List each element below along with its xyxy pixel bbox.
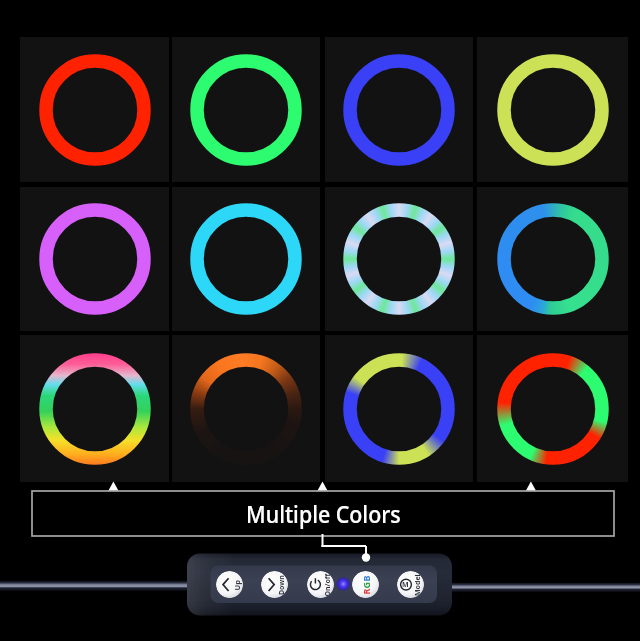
staticText: R <box>359 588 371 594</box>
button[interactable] <box>325 187 473 331</box>
staticText: Up <box>231 579 241 590</box>
button[interactable] <box>20 335 169 482</box>
button[interactable] <box>172 187 320 331</box>
staticText: On/off <box>322 573 332 596</box>
button[interactable] <box>20 37 169 182</box>
staticText: Multiple Colors <box>246 498 401 530</box>
button[interactable] <box>325 37 473 182</box>
button[interactable] <box>172 37 320 182</box>
button[interactable] <box>477 37 628 182</box>
button[interactable] <box>477 335 628 482</box>
button[interactable]: Model <box>397 571 424 598</box>
staticText: Model <box>413 574 423 596</box>
button[interactable]: On/off <box>307 571 334 598</box>
button[interactable] <box>172 335 320 482</box>
button[interactable] <box>477 187 628 331</box>
button[interactable]: RGB <box>352 571 379 598</box>
staticText: G <box>359 581 371 588</box>
button[interactable] <box>325 335 473 482</box>
button[interactable]: Up <box>216 571 243 598</box>
button[interactable]: Down <box>261 571 288 598</box>
button[interactable]: Multiple Colors <box>32 491 614 536</box>
staticText: Down <box>277 575 287 595</box>
button[interactable] <box>20 187 169 331</box>
staticText: B <box>359 575 371 581</box>
staticText: M <box>402 580 409 590</box>
